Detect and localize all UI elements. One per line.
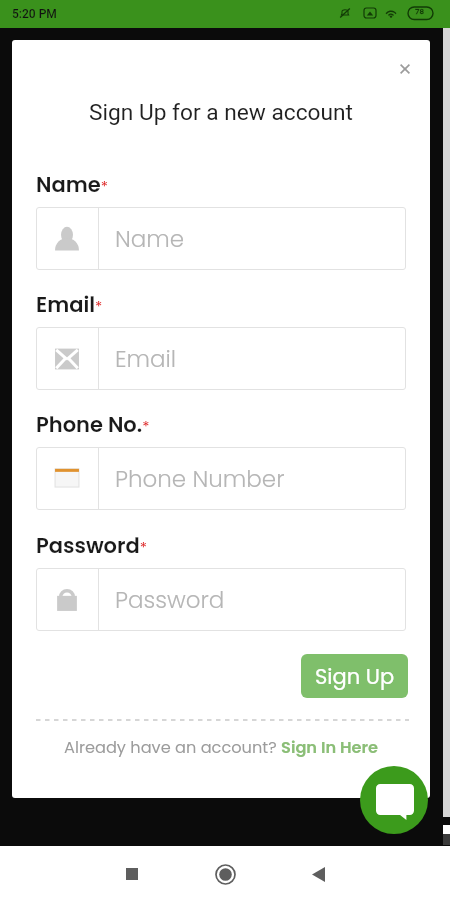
staticText: Name [115, 223, 185, 255]
staticText: 5:20 PM [12, 7, 57, 21]
button[interactable]: Name [36, 207, 406, 270]
button[interactable]: Chat [360, 766, 428, 834]
button[interactable]: Phone Number [36, 447, 406, 510]
staticText: Name* [36, 170, 108, 199]
staticText: 78 [415, 7, 425, 16]
staticText: Phone Number [115, 463, 285, 495]
button[interactable]: Password [36, 568, 406, 631]
staticText: Email [115, 343, 177, 375]
staticText: Email* [36, 290, 103, 319]
button[interactable]: Back [300, 846, 336, 900]
staticText: Already have an account? Sign In Here [64, 736, 379, 759]
staticText: Sign Up [315, 662, 395, 691]
button[interactable]: Email [36, 327, 406, 390]
button[interactable]: Sign Up [301, 654, 408, 698]
staticText: Password* [36, 531, 148, 560]
button[interactable]: Already have an account? Sign In Here [12, 736, 430, 759]
staticText: Phone No.* [36, 410, 150, 439]
staticText: Password [115, 584, 225, 616]
staticText: Sign Up for a new account [12, 99, 430, 126]
button[interactable]: Close [394, 58, 416, 80]
button[interactable]: Home [207, 846, 243, 900]
button[interactable]: Recent apps [114, 846, 150, 900]
